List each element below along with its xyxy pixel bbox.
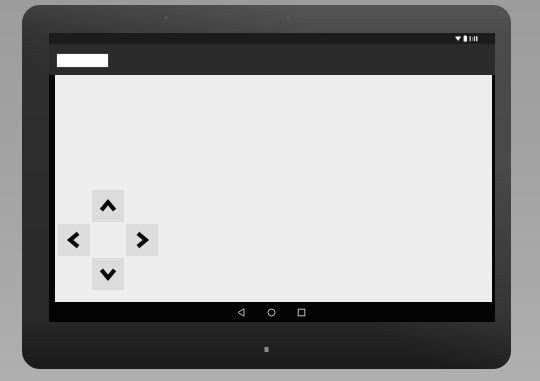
button[interactable]: Left (58, 224, 90, 256)
button[interactable]: Up (92, 190, 124, 222)
button[interactable]: Right (126, 224, 158, 256)
button[interactable]: Recent apps (295, 306, 308, 319)
button[interactable]: Home (265, 306, 278, 319)
button[interactable]: Back (235, 306, 248, 319)
button[interactable] (56, 53, 109, 68)
button[interactable]: Down (92, 258, 124, 290)
